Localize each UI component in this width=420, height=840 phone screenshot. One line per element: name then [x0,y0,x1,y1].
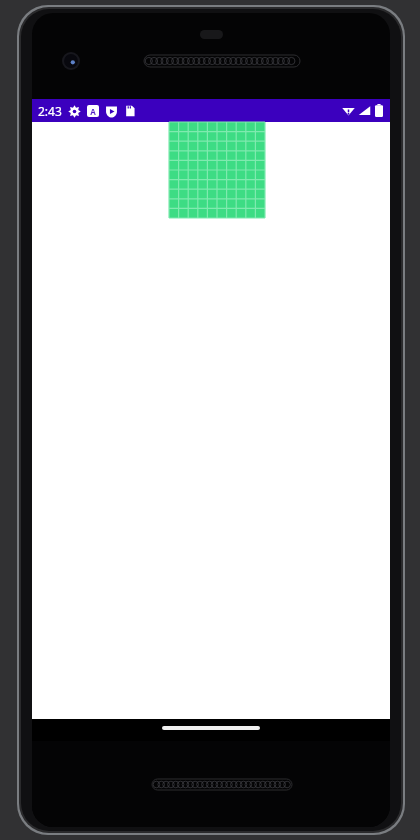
staticText: 2:43 [38,103,62,119]
button[interactable] [169,122,265,218]
button[interactable]: Home [162,726,260,730]
staticText: A [90,106,96,117]
